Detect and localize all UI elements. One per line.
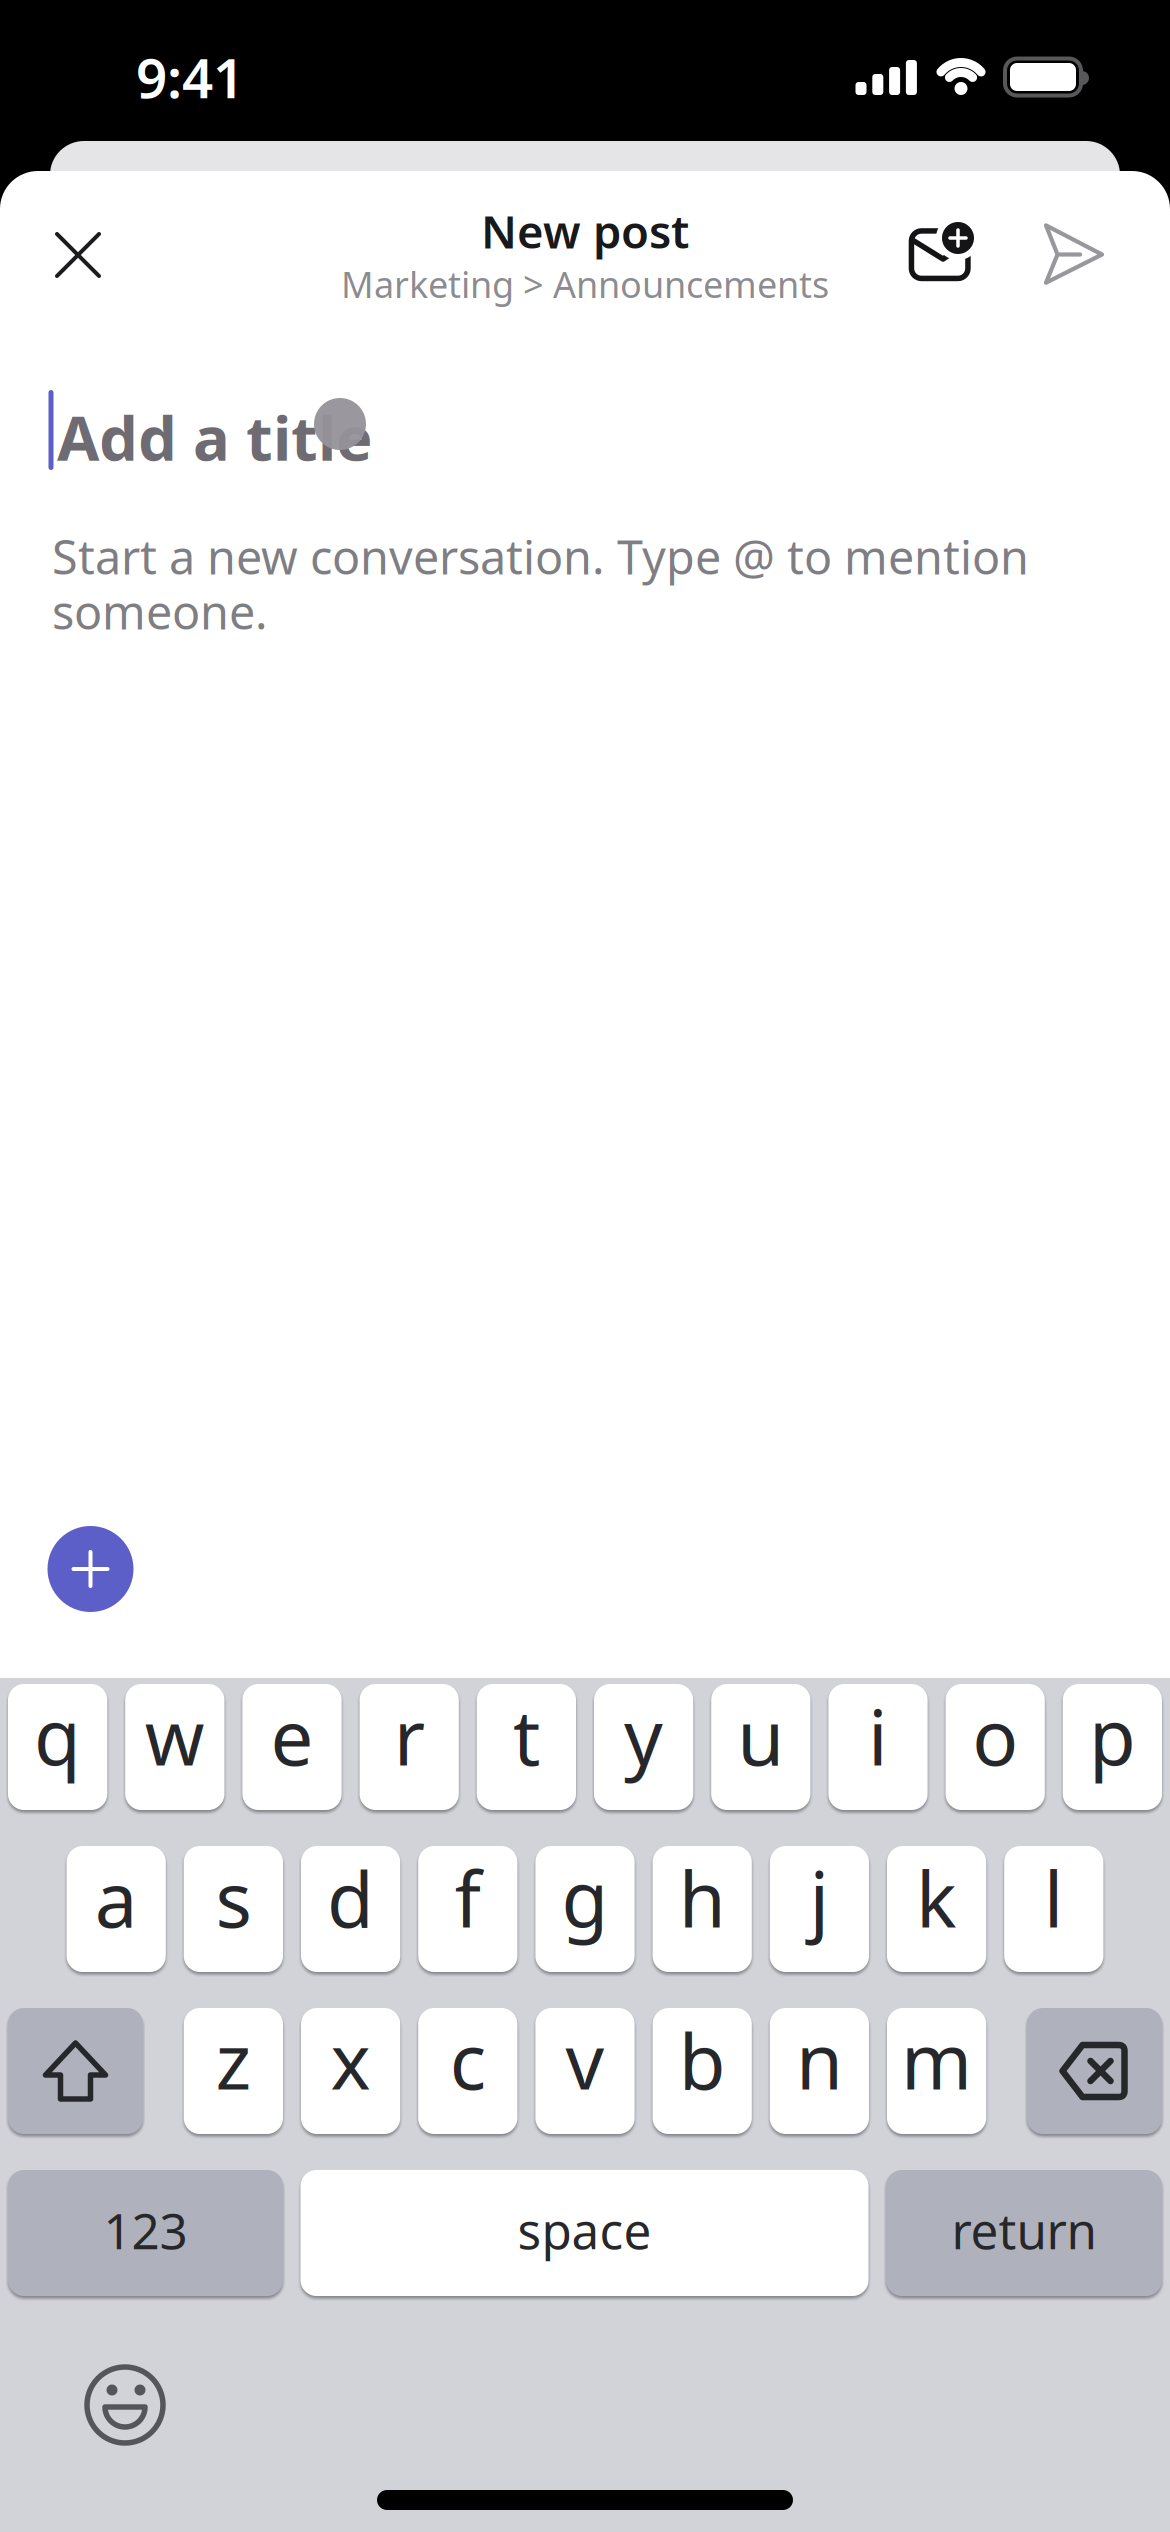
staticText: h (679, 1847, 726, 1948)
staticText: g (561, 1847, 608, 1948)
staticText: c (450, 2009, 486, 2110)
staticText: New post (481, 201, 689, 261)
staticText: Marketing > Announcements (341, 260, 829, 308)
button[interactable]: Add (47, 1526, 133, 1612)
button[interactable]: Shift (8, 2008, 143, 2134)
button[interactable]: l (1004, 1846, 1103, 1972)
staticText: j (809, 1847, 829, 1948)
staticText: e (270, 1685, 313, 1786)
staticText: o (972, 1685, 1018, 1786)
button[interactable]: z (184, 2008, 283, 2134)
staticText: m (901, 2009, 972, 2110)
button[interactable]: s (184, 1846, 283, 1972)
button[interactable]: j (770, 1846, 869, 1972)
button[interactable]: q (8, 1684, 107, 1810)
button[interactable]: u (711, 1684, 810, 1810)
staticText: z (215, 2009, 251, 2110)
staticText: s (215, 1847, 251, 1948)
staticText: a (95, 1847, 138, 1948)
button[interactable]: a (67, 1846, 166, 1972)
staticText: v (565, 2009, 604, 2110)
staticText: 123 (103, 2197, 187, 2263)
staticText: u (737, 1685, 784, 1786)
staticText: r (394, 1685, 425, 1786)
button[interactable]: v (535, 2008, 635, 2134)
staticText: space (517, 2197, 651, 2263)
button[interactable]: b (653, 2008, 752, 2134)
button[interactable]: y (594, 1684, 693, 1810)
button[interactable]: return (886, 2170, 1162, 2296)
button[interactable]: Delete (1027, 2008, 1162, 2134)
staticText: f (455, 1847, 481, 1948)
staticText: q (34, 1685, 81, 1786)
button[interactable]: k (887, 1846, 986, 1972)
button[interactable]: t (477, 1684, 576, 1810)
button[interactable]: g (535, 1846, 635, 1972)
button[interactable]: 123 (8, 2170, 283, 2296)
staticText: w (145, 1685, 205, 1786)
staticText: d (327, 1847, 374, 1948)
button[interactable]: n (770, 2008, 869, 2134)
button[interactable]: Send (1029, 209, 1119, 299)
staticText: y (624, 1685, 663, 1786)
staticText: i (868, 1685, 888, 1786)
staticText: n (796, 2009, 843, 2110)
button[interactable]: x (301, 2008, 400, 2134)
button[interactable]: h (653, 1846, 752, 1972)
staticText: 9:41 (136, 41, 244, 113)
button[interactable]: m (887, 2008, 986, 2134)
button[interactable]: f (418, 1846, 517, 1972)
staticText: Add a title (57, 396, 373, 478)
button[interactable]: e (242, 1684, 342, 1810)
staticText: t (513, 1685, 540, 1786)
button[interactable]: Close (33, 210, 123, 300)
button[interactable]: i (828, 1684, 928, 1810)
button[interactable]: c (418, 2008, 517, 2134)
button[interactable]: space (300, 2170, 868, 2296)
button[interactable]: o (946, 1684, 1045, 1810)
staticText: b (679, 2009, 726, 2110)
staticText: p (1089, 1685, 1136, 1786)
button[interactable]: r (360, 1684, 459, 1810)
staticText: return (951, 2197, 1096, 2263)
button[interactable]: w (125, 1684, 224, 1810)
staticText: l (1044, 1847, 1064, 1948)
button[interactable]: Emoji (83, 2363, 167, 2447)
button[interactable]: p (1063, 1684, 1162, 1810)
button[interactable]: d (301, 1846, 400, 1972)
staticText: Start a new conversation. Type @ to ment… (52, 525, 1029, 642)
button[interactable]: New message (897, 208, 989, 294)
staticText: x (331, 2009, 371, 2110)
staticText: k (916, 1847, 957, 1948)
